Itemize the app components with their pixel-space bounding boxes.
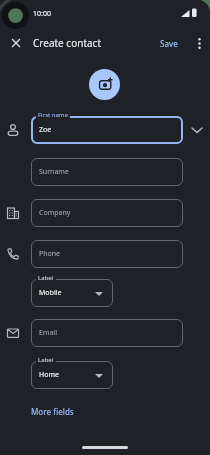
staticText: Email <box>39 328 57 338</box>
button[interactable]: Mobile <box>31 279 113 307</box>
staticText: First name <box>38 111 68 119</box>
staticText: Phone <box>39 249 61 259</box>
button[interactable]: Zoe <box>31 116 183 144</box>
staticText: Label <box>38 274 54 282</box>
staticText: Zoe <box>39 125 52 135</box>
staticText: Mobile <box>39 288 62 298</box>
staticText: Home <box>39 370 59 380</box>
button[interactable] <box>4 31 28 55</box>
staticText: Label <box>38 356 54 364</box>
button[interactable]: Phone <box>31 240 183 268</box>
button[interactable] <box>188 28 210 58</box>
button[interactable]: More fields <box>26 400 79 422</box>
button[interactable]: Company <box>31 199 183 227</box>
staticText: More fields <box>31 406 74 417</box>
button[interactable] <box>183 116 210 144</box>
button[interactable] <box>89 69 120 100</box>
button[interactable]: Email <box>31 319 183 347</box>
staticText: 10:00 <box>33 9 51 19</box>
staticText: Company <box>39 208 71 218</box>
staticText: Create contact <box>33 36 102 50</box>
button[interactable]: Home <box>31 361 113 389</box>
staticText: Surname <box>39 167 69 177</box>
button[interactable]: Surname <box>31 158 183 186</box>
button[interactable]: Save <box>155 28 183 58</box>
staticText: Save <box>160 38 178 49</box>
